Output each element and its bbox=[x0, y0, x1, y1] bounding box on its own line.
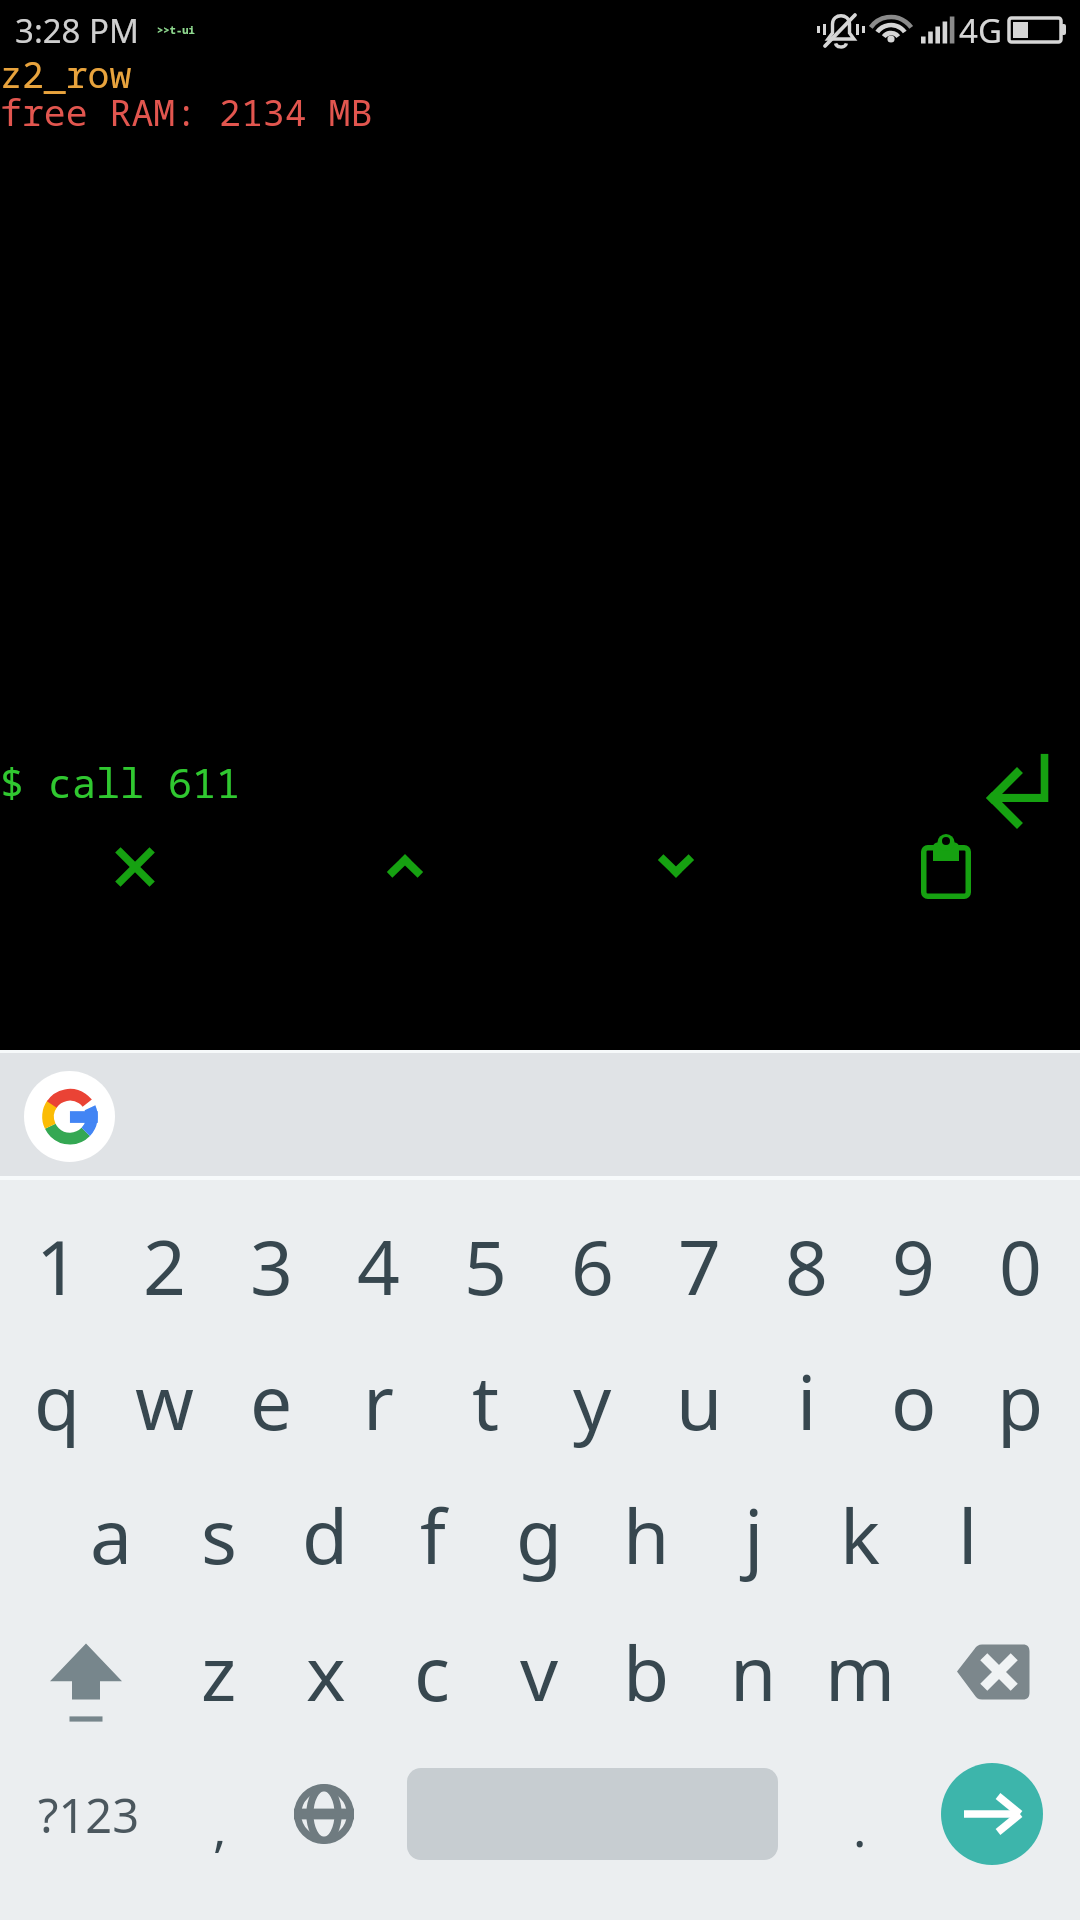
staticText: 3 bbox=[250, 1215, 293, 1317]
staticText: 9 bbox=[892, 1215, 935, 1317]
button[interactable]: 1 bbox=[4, 1190, 111, 1328]
button[interactable]: s bbox=[165, 1459, 272, 1597]
button[interactable]: Backspace bbox=[908, 1616, 1080, 1746]
button[interactable]: z bbox=[165, 1596, 272, 1734]
button[interactable]: h bbox=[593, 1459, 700, 1597]
button[interactable]: 2 bbox=[111, 1190, 218, 1328]
button[interactable]: Next command bbox=[626, 816, 726, 916]
staticText: 4G bbox=[959, 8, 1002, 53]
staticText: $ call 611 bbox=[0, 755, 240, 809]
button[interactable]: m bbox=[807, 1596, 914, 1734]
staticText: h bbox=[623, 1484, 670, 1586]
button[interactable]: Change language bbox=[270, 1739, 378, 1889]
staticText: y bbox=[573, 1350, 612, 1452]
button[interactable]: l bbox=[914, 1459, 1021, 1597]
staticText: k bbox=[840, 1484, 881, 1586]
button[interactable]: i bbox=[753, 1325, 860, 1463]
staticText: 2 bbox=[143, 1215, 186, 1317]
staticText: , bbox=[213, 1794, 227, 1862]
staticText: a bbox=[90, 1484, 133, 1586]
button[interactable]: f bbox=[379, 1459, 486, 1597]
button[interactable]: 6 bbox=[539, 1190, 646, 1328]
staticText: t bbox=[472, 1350, 500, 1452]
button[interactable]: o bbox=[860, 1325, 967, 1463]
staticText: 8 bbox=[785, 1215, 828, 1317]
button[interactable]: Google search bbox=[24, 1071, 115, 1162]
button[interactable]: , bbox=[170, 1739, 270, 1889]
staticText: p bbox=[997, 1350, 1044, 1452]
staticText: free RAM: 2134 MB bbox=[0, 87, 373, 137]
button[interactable]: g bbox=[486, 1459, 593, 1597]
staticText: e bbox=[250, 1350, 293, 1452]
button[interactable]: j bbox=[700, 1459, 807, 1597]
button[interactable]: Enter bbox=[941, 1763, 1043, 1865]
staticText: u bbox=[676, 1350, 723, 1452]
button[interactable]: c bbox=[379, 1596, 486, 1734]
button[interactable]: 9 bbox=[860, 1190, 967, 1328]
staticText: 0 bbox=[999, 1215, 1042, 1317]
button[interactable]: 5 bbox=[432, 1190, 539, 1328]
staticText: 4 bbox=[357, 1215, 400, 1317]
staticText: l bbox=[958, 1484, 978, 1586]
button[interactable]: 7 bbox=[646, 1190, 753, 1328]
staticText: w bbox=[135, 1350, 194, 1452]
button[interactable]: Clear bbox=[85, 817, 185, 917]
button[interactable]: p bbox=[967, 1325, 1074, 1463]
staticText: 5 bbox=[464, 1215, 507, 1317]
button[interactable]: Previous command bbox=[355, 816, 455, 916]
button[interactable]: k bbox=[807, 1459, 914, 1597]
staticText: z bbox=[201, 1621, 237, 1723]
button[interactable]: q bbox=[4, 1325, 111, 1463]
button[interactable]: Shift bbox=[0, 1616, 172, 1746]
staticText: x bbox=[306, 1621, 346, 1723]
staticText: v bbox=[520, 1621, 559, 1723]
button[interactable]: Paste bbox=[899, 819, 999, 919]
staticText: . bbox=[853, 1794, 867, 1862]
staticText: z2_row bbox=[0, 49, 132, 99]
button[interactable]: 8 bbox=[753, 1190, 860, 1328]
button[interactable]: r bbox=[325, 1325, 432, 1463]
staticText: j bbox=[744, 1484, 764, 1586]
button[interactable]: Run command bbox=[969, 739, 1069, 839]
button[interactable]: e bbox=[218, 1325, 325, 1463]
staticText: g bbox=[516, 1484, 563, 1586]
staticText: ?123 bbox=[38, 1783, 140, 1847]
button[interactable]: n bbox=[700, 1596, 807, 1734]
button[interactable]: w bbox=[111, 1325, 218, 1463]
button[interactable]: v bbox=[486, 1596, 593, 1734]
staticText: s bbox=[201, 1484, 237, 1586]
button[interactable]: u bbox=[646, 1325, 753, 1463]
button[interactable]: 3 bbox=[218, 1190, 325, 1328]
button[interactable]: x bbox=[272, 1596, 379, 1734]
button[interactable]: y bbox=[539, 1325, 646, 1463]
button[interactable]: . bbox=[810, 1739, 910, 1889]
staticText: f bbox=[420, 1484, 446, 1586]
button[interactable]: a bbox=[58, 1459, 165, 1597]
button[interactable]: ?123 bbox=[0, 1739, 170, 1889]
staticText: q bbox=[34, 1350, 81, 1452]
staticText: 6 bbox=[571, 1215, 614, 1317]
staticText: >>t-ui bbox=[157, 23, 195, 37]
staticText: o bbox=[891, 1350, 937, 1452]
button[interactable]: 4 bbox=[325, 1190, 432, 1328]
button[interactable]: b bbox=[593, 1596, 700, 1734]
button[interactable]: t bbox=[432, 1325, 539, 1463]
staticText: d bbox=[302, 1484, 349, 1586]
staticText: b bbox=[623, 1621, 670, 1723]
staticText: 3:28 PM bbox=[15, 8, 139, 53]
button[interactable]: 0 bbox=[967, 1190, 1074, 1328]
button[interactable]: d bbox=[272, 1459, 379, 1597]
staticText: c bbox=[414, 1621, 451, 1723]
staticText: 7 bbox=[678, 1215, 721, 1317]
staticText: n bbox=[730, 1621, 777, 1723]
staticText: i bbox=[797, 1350, 817, 1452]
staticText: 1 bbox=[36, 1215, 79, 1317]
staticText: m bbox=[825, 1621, 896, 1723]
staticText: r bbox=[363, 1350, 394, 1452]
